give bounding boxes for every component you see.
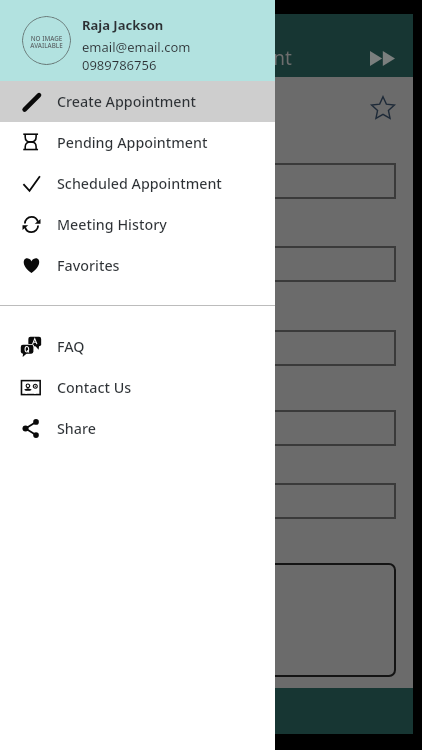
staticText: FAQ [57, 337, 85, 356]
button[interactable]: Meeting History [0, 204, 275, 245]
button[interactable]: Scheduled Appointment [0, 163, 275, 204]
button[interactable]: Contact Us [0, 367, 275, 408]
staticText: Scheduled Appointment [57, 174, 222, 193]
staticText: Create Appointment [57, 92, 196, 111]
staticText: 0989786756 [82, 56, 157, 74]
button[interactable]: Next [366, 42, 398, 74]
button[interactable]: FAQ [0, 326, 275, 367]
staticText: Meeting History [57, 215, 167, 234]
staticText: Share [57, 419, 96, 438]
staticText: Pending Appointment [57, 133, 208, 152]
staticText: Favorites [57, 256, 120, 275]
button[interactable]: Favorites [0, 245, 275, 286]
staticText: Create Appointment [111, 45, 292, 71]
staticText: Raja Jackson [82, 16, 164, 34]
button[interactable]: Favorite [370, 95, 396, 121]
staticText: email@email.com [82, 38, 191, 56]
button[interactable]: Share [0, 408, 275, 449]
staticText: Contact Us [57, 378, 132, 397]
staticText: NO IMAGE AVAILABLE [30, 34, 63, 50]
button[interactable]: Create Appointment [0, 81, 275, 122]
button[interactable]: Pending Appointment [0, 122, 275, 163]
